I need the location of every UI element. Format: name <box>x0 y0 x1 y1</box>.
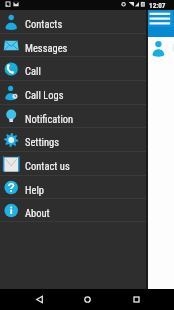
button[interactable]: Recent apps <box>125 289 146 310</box>
staticText: Contact us <box>25 160 70 172</box>
staticText: 12:07 <box>149 1 166 9</box>
button[interactable]: Open navigation drawer <box>147 10 173 27</box>
staticText: Settings <box>25 136 60 148</box>
button[interactable]: Settings <box>0 128 146 152</box>
button[interactable]: Home <box>77 289 98 310</box>
button[interactable]: Help <box>0 176 146 199</box>
button[interactable]: Contacts <box>0 10 146 34</box>
staticText: Contacts <box>25 18 63 30</box>
button[interactable]: Back <box>28 289 49 310</box>
button[interactable]: Messages <box>0 34 146 57</box>
staticText: Notification <box>25 113 74 125</box>
staticText: About <box>25 207 50 219</box>
button[interactable]: Call <box>0 57 146 81</box>
button[interactable]: Notification <box>0 105 146 128</box>
button[interactable]: Contact us <box>0 152 146 176</box>
staticText: Messages <box>25 42 68 54</box>
staticText: Call Logs <box>25 89 64 101</box>
button[interactable]: About <box>0 199 146 222</box>
staticText: Help <box>25 184 45 196</box>
staticText: Call <box>25 65 41 77</box>
button[interactable]: Call Logs <box>0 81 146 105</box>
